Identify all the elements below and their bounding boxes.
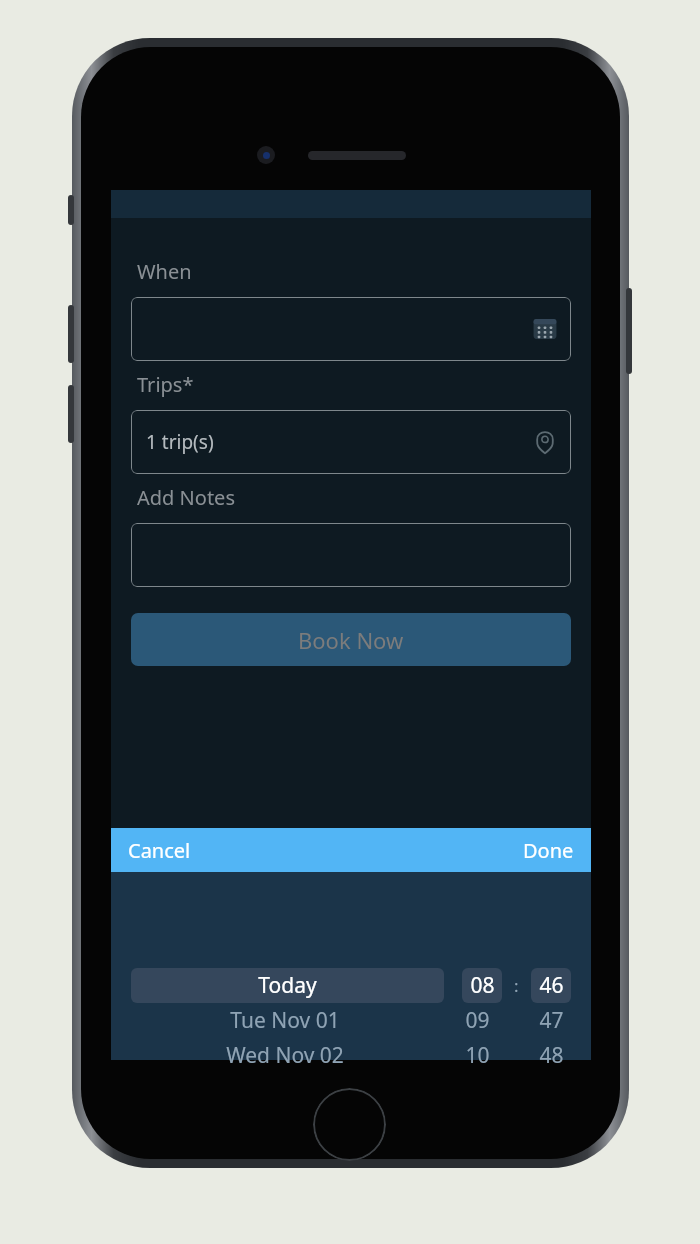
button[interactable]: 10 <box>457 1038 497 1073</box>
staticText: Wed Nov 02 <box>226 1041 344 1070</box>
button[interactable]: 09 <box>457 1003 497 1038</box>
button[interactable]: Wed Nov 02 <box>131 1038 439 1073</box>
staticText: 1 trip(s) <box>146 429 214 455</box>
button[interactable]: Book Now <box>131 613 571 666</box>
staticText: Today <box>258 971 317 1000</box>
button[interactable]: Today <box>131 968 444 1003</box>
button[interactable]: Done <box>506 831 591 870</box>
button[interactable]: 1 trip(s) <box>131 410 571 474</box>
staticText: Add Notes <box>137 484 235 511</box>
other: Pick location <box>532 429 558 455</box>
staticText: Trips* <box>137 371 194 398</box>
staticText: 46 <box>539 971 564 1000</box>
button[interactable]: 46 <box>531 968 571 1003</box>
staticText: 10 <box>465 1041 490 1070</box>
staticText: Book Now <box>298 625 404 655</box>
button[interactable]: 08 <box>462 968 502 1003</box>
staticText: : <box>514 974 519 997</box>
button[interactable]: Cancel <box>111 831 208 870</box>
staticText: Cancel <box>128 837 191 864</box>
staticText: 08 <box>470 971 495 1000</box>
staticText: Tue Nov 01 <box>230 1006 340 1035</box>
staticText: 48 <box>539 1041 564 1070</box>
staticText: When <box>137 258 192 285</box>
button[interactable]: 47 <box>531 1003 571 1038</box>
button[interactable]: Pick date <box>131 297 571 361</box>
button[interactable] <box>131 523 571 587</box>
staticText: 09 <box>465 1006 490 1035</box>
other: Pick date <box>532 316 558 342</box>
button[interactable]: 48 <box>531 1038 571 1073</box>
button[interactable]: Tue Nov 01 <box>131 1003 439 1038</box>
staticText: Done <box>523 837 574 864</box>
staticText: 47 <box>539 1006 564 1035</box>
